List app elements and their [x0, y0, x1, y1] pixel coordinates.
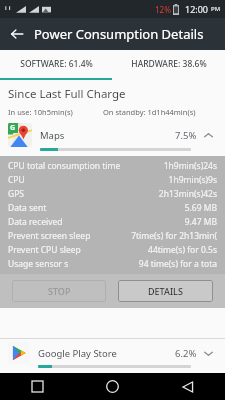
- staticText: 6.2%: [175, 347, 197, 360]
- staticText: 1h9min(s)24s: [163, 160, 217, 172]
- staticText: 7time(s) for 2h13min(: [131, 230, 217, 242]
- button[interactable]: STOP: [12, 280, 106, 302]
- button[interactable]: HARDWARE: 38.6%: [112, 50, 225, 78]
- staticText: Data sent: [8, 202, 184, 214]
- button[interactable]: Back: [150, 373, 225, 400]
- staticText: Maps: [40, 129, 175, 142]
- staticText: Power Consumption Details: [34, 25, 204, 43]
- staticText: 2h13min(s)42s: [158, 188, 217, 200]
- button[interactable]: Google Play Store: [0, 338, 225, 373]
- staticText: 12%: [155, 4, 171, 15]
- button[interactable]: Back: [0, 18, 34, 50]
- button[interactable]: Collapse: [197, 124, 219, 146]
- staticText: In use: 10h5min(s): [8, 107, 103, 117]
- staticText: Data received: [8, 216, 184, 228]
- staticText: 9.47 MB: [184, 216, 217, 228]
- staticText: HARDWARE: 38.6%: [131, 58, 207, 70]
- staticText: PM: [211, 5, 221, 13]
- staticText: 44time(s) for 0.5s: [148, 244, 217, 256]
- staticText: 94 time(s) for a tota: [138, 258, 217, 270]
- staticText: 1h9min(s)9s: [168, 174, 217, 186]
- button[interactable]: Expand: [197, 342, 219, 364]
- button[interactable]: DETAILS: [118, 280, 213, 302]
- button[interactable]: Home: [75, 373, 150, 400]
- staticText: STOP: [48, 285, 71, 297]
- staticText: Prevent CPU sleep: [8, 244, 148, 256]
- staticText: 5.69 MB: [184, 202, 217, 214]
- button[interactable]: G: [0, 121, 225, 156]
- staticText: Since Last Full Charge: [8, 86, 126, 102]
- button[interactable]: Recents: [0, 373, 75, 400]
- staticText: On standby: 1d1h44min(s): [103, 107, 217, 117]
- staticText: G: [10, 123, 16, 133]
- staticText: 12:00: [185, 3, 209, 15]
- staticText: Usage sensor s: [8, 258, 138, 270]
- button[interactable]: SOFTWARE: 61.4%: [0, 50, 112, 78]
- staticText: SOFTWARE: 61.4%: [20, 58, 93, 70]
- staticText: Prevent screen sleep: [8, 230, 131, 242]
- staticText: CPU: [8, 174, 168, 186]
- staticText: CPU total consumption time: [8, 160, 163, 172]
- staticText: DETAILS: [148, 285, 183, 297]
- staticText: GPS: [8, 188, 158, 200]
- staticText: Google Play Store: [38, 347, 175, 360]
- staticText: 7.5%: [175, 129, 197, 142]
